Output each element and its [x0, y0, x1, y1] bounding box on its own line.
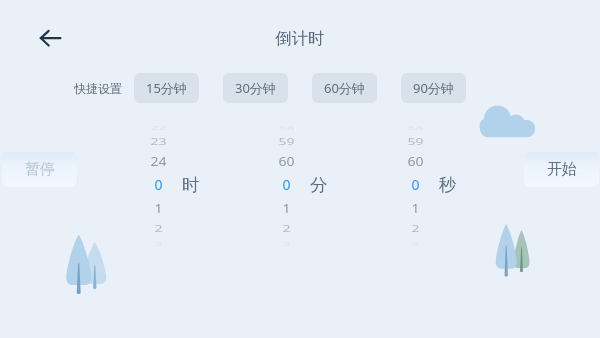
staticText: 暂停 — [25, 160, 55, 179]
staticText: 3 — [154, 241, 163, 247]
button[interactable]: 90分钟 — [401, 73, 466, 103]
staticText: 60 — [407, 153, 424, 170]
staticText: 快捷设置 — [74, 81, 122, 96]
staticText: 3 — [282, 241, 291, 247]
staticText: 15分钟 — [146, 79, 187, 97]
staticText: 3 — [411, 241, 420, 247]
staticText: 59 — [407, 135, 424, 147]
staticText: 1 — [282, 200, 291, 217]
button[interactable]: 15分钟 — [134, 73, 199, 103]
button[interactable]: 30分钟 — [223, 73, 288, 103]
button[interactable]: Back — [34, 23, 66, 55]
staticText: 22 — [150, 125, 167, 131]
staticText: 1 — [154, 200, 163, 217]
staticText: 0 — [282, 175, 291, 194]
button[interactable]: 暂停 — [2, 152, 77, 187]
staticText: 时 — [182, 174, 200, 196]
staticText: 2 — [282, 222, 291, 234]
staticText: 59 — [278, 135, 295, 147]
staticText: 0 — [154, 175, 163, 194]
staticText: 60分钟 — [324, 79, 365, 97]
staticText: 23 — [150, 135, 167, 147]
staticText: 30分钟 — [235, 79, 276, 97]
button[interactable]: 分钟 — [256, 118, 316, 254]
staticText: 90分钟 — [413, 79, 454, 97]
button[interactable]: 60分钟 — [312, 73, 377, 103]
staticText: 倒计时 — [275, 28, 325, 49]
staticText: 58 — [407, 125, 424, 131]
staticText: 24 — [150, 153, 167, 170]
staticText: 2 — [154, 222, 163, 234]
button[interactable]: 秒 — [385, 118, 445, 254]
staticText: 60 — [278, 153, 295, 170]
staticText: 58 — [278, 125, 295, 131]
staticText: 开始 — [547, 160, 577, 179]
button[interactable]: 小时 — [128, 118, 188, 254]
button[interactable]: 开始 — [524, 152, 599, 187]
staticText: 1 — [411, 200, 420, 217]
staticText: 0 — [411, 175, 420, 194]
staticText: 分 — [310, 174, 328, 196]
staticText: 2 — [411, 222, 420, 234]
staticText: 秒 — [439, 174, 457, 196]
